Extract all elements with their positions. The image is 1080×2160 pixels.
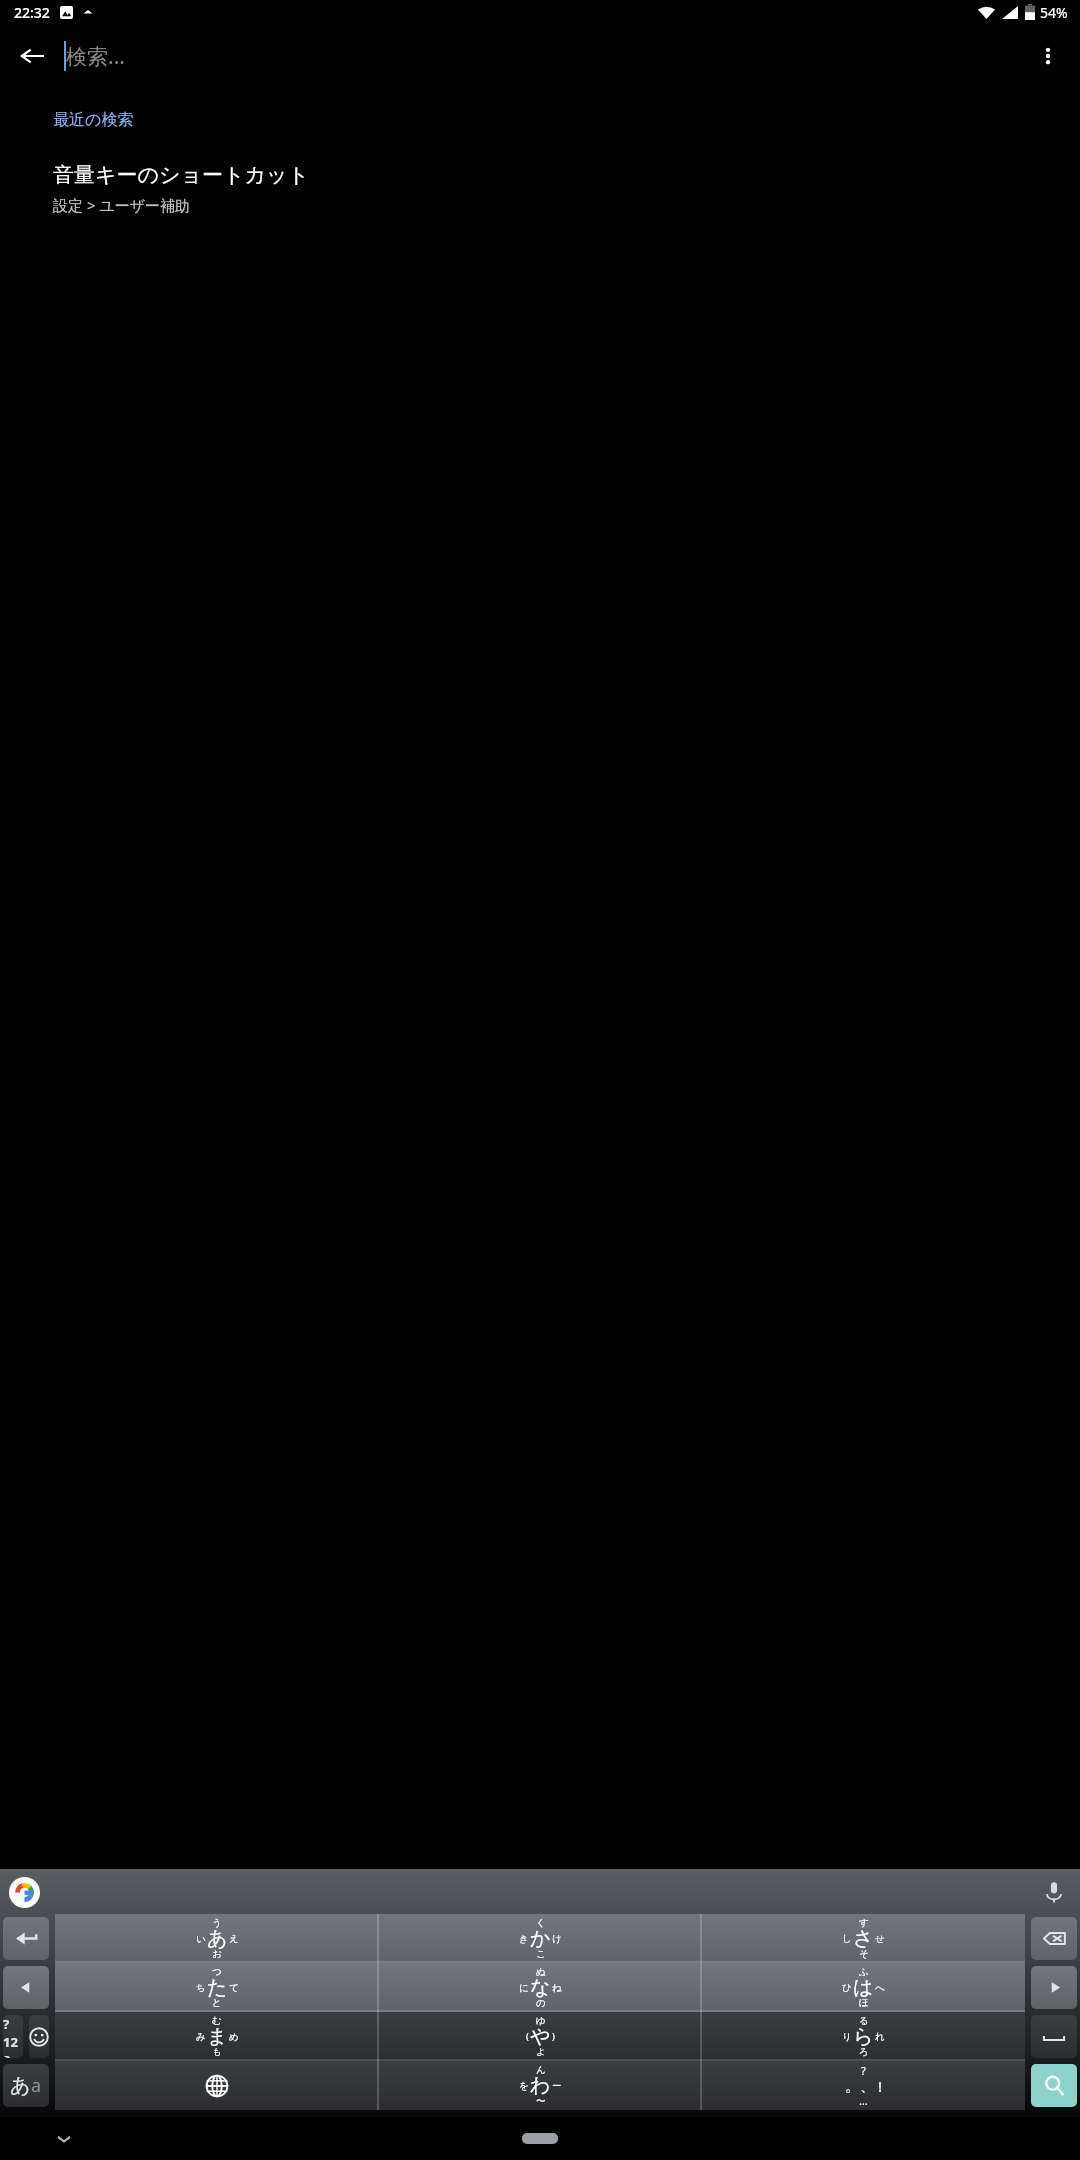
- staticText: に: [519, 1982, 529, 1994]
- staticText: し: [842, 1933, 852, 1945]
- staticText: ぬ: [536, 1966, 546, 1978]
- button[interactable]: Backspace: [1031, 1917, 1077, 1960]
- button[interactable]: Switch language: [3, 2064, 49, 2107]
- staticText: ち: [196, 1982, 206, 1994]
- staticText: い: [196, 1933, 206, 1945]
- button[interactable]: や: [379, 2012, 702, 2061]
- button[interactable]: ま: [55, 2012, 379, 2061]
- staticText: と: [212, 1997, 222, 2009]
- staticText: え: [229, 1933, 239, 1945]
- button[interactable]: Search: [1031, 2064, 1077, 2107]
- staticText: の: [536, 1997, 546, 2009]
- staticText: ま: [207, 2024, 228, 2049]
- button[interactable]: key: [55, 2061, 379, 2110]
- staticText: ふ: [859, 1966, 869, 1978]
- button[interactable]: 音量キーのショートカット: [0, 158, 1080, 223]
- staticText: む: [212, 2015, 222, 2027]
- staticText: ね: [552, 1982, 562, 1994]
- staticText: (: [526, 2030, 529, 2043]
- button[interactable]: 検索...: [64, 32, 1024, 80]
- button[interactable]: Hide keyboard: [44, 2119, 84, 2159]
- staticText: a: [31, 2073, 42, 2098]
- staticText: …: [859, 2093, 868, 2108]
- staticText: る: [859, 2015, 869, 2027]
- staticText: つ: [212, 1966, 222, 1978]
- staticText: 設定 > ユーザー補助: [53, 195, 191, 215]
- button[interactable]: な: [379, 1963, 702, 2012]
- staticText: ろ: [859, 2046, 869, 2058]
- button[interactable]: Cursor right: [1031, 1966, 1077, 2009]
- staticText: ー: [552, 2080, 562, 2092]
- staticText: ?: [861, 2063, 866, 2078]
- staticText: あ: [10, 2073, 31, 2098]
- button[interactable]: ら: [702, 2012, 1025, 2061]
- button[interactable]: key: [702, 2061, 1025, 2110]
- staticText: ほ: [859, 1997, 869, 2009]
- staticText: 22:32: [14, 3, 50, 22]
- staticText: ひ: [842, 1982, 852, 1994]
- staticText: せ: [875, 1933, 885, 1945]
- staticText: わ: [530, 2073, 551, 2098]
- button[interactable]: More options: [1024, 32, 1072, 80]
- staticText: よ: [536, 2046, 546, 2058]
- button[interactable]: か: [379, 1914, 702, 1963]
- staticText: 54%: [1040, 3, 1068, 22]
- staticText: す: [859, 1917, 869, 1929]
- staticText: ): [552, 2030, 555, 2043]
- button[interactable]: さ: [702, 1914, 1025, 1963]
- staticText: さ: [853, 1926, 874, 1951]
- button[interactable]: た: [55, 1963, 379, 2012]
- staticText: は: [853, 1975, 874, 2000]
- staticText: そ: [859, 1948, 869, 1960]
- button[interactable]: あ: [55, 1914, 379, 1963]
- staticText: み: [196, 2031, 206, 2043]
- button[interactable]: わ: [379, 2061, 702, 2110]
- button[interactable]: Emoji: [29, 2015, 49, 2058]
- button[interactable]: Back: [8, 32, 56, 80]
- button[interactable]: Symbols: [3, 2015, 23, 2058]
- staticText: け: [552, 1933, 562, 1945]
- staticText: 。: [845, 2077, 860, 2096]
- staticText: へ: [875, 1982, 885, 1994]
- staticText: を: [519, 2080, 529, 2092]
- staticText: め: [229, 2031, 239, 2043]
- staticText: て: [229, 1982, 239, 1994]
- button[interactable]: は: [702, 1963, 1025, 2012]
- button[interactable]: Space: [1031, 2015, 1077, 2058]
- button[interactable]: 最近の検索: [0, 104, 1080, 136]
- staticText: ん: [536, 2064, 546, 2076]
- staticText: こ: [536, 1948, 546, 1960]
- button[interactable]: Home: [514, 2125, 566, 2152]
- staticText: や: [530, 2024, 551, 2049]
- staticText: か: [530, 1926, 551, 1951]
- staticText: た: [207, 1975, 228, 2000]
- button[interactable]: Cursor left: [3, 1966, 49, 2009]
- staticText: お: [212, 1948, 222, 1960]
- button[interactable]: Google: [8, 1876, 40, 1908]
- staticText: ?123: [3, 2015, 23, 2058]
- staticText: な: [530, 1975, 551, 2000]
- staticText: れ: [875, 2031, 885, 2043]
- staticText: 〜: [536, 2095, 546, 2107]
- staticText: く: [536, 1917, 546, 1929]
- staticText: 音量キーのショートカット: [53, 162, 309, 188]
- staticText: き: [519, 1933, 529, 1945]
- staticText: う: [212, 1917, 222, 1929]
- staticText: 、: [860, 2077, 875, 2096]
- staticText: 最近の検索: [53, 110, 134, 130]
- staticText: あ: [207, 1926, 228, 1951]
- staticText: ゆ: [536, 2015, 546, 2027]
- staticText: !: [878, 2076, 883, 2096]
- staticText: り: [842, 2031, 852, 2043]
- staticText: 検索...: [66, 42, 125, 71]
- staticText: も: [212, 2046, 222, 2058]
- button[interactable]: Undo: [3, 1917, 49, 1960]
- staticText: ら: [853, 2024, 874, 2049]
- button[interactable]: Voice input: [1036, 1874, 1072, 1910]
